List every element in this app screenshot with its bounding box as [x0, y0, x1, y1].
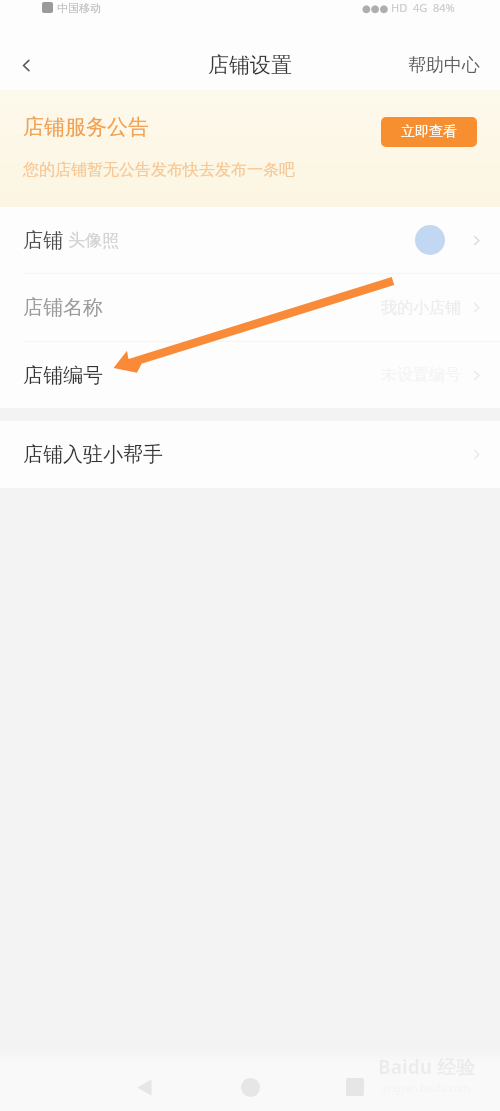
staticText: HD 4G 84% [391, 0, 455, 15]
button[interactable]: 店铺名称 [0, 274, 500, 341]
staticText: 店铺编号 [23, 363, 103, 388]
staticText: 店铺 [23, 228, 63, 253]
staticText: 中国移动 [57, 1, 101, 15]
button[interactable]: Back [8, 47, 44, 83]
staticText: 我的小店铺 [381, 298, 461, 318]
staticText: 未设置编号 [381, 365, 461, 385]
staticText: 店铺设置 [208, 52, 292, 78]
button[interactable]: 帮助中心 [394, 46, 500, 85]
button[interactable]: Back [120, 1063, 170, 1111]
button[interactable]: 店铺 [0, 207, 500, 273]
staticText: 帮助中心 [408, 54, 480, 77]
staticText: 头像照 [68, 230, 119, 251]
button[interactable]: 立即查看 [381, 117, 477, 147]
button[interactable]: Recents [330, 1063, 380, 1111]
button[interactable]: 店铺入驻小帮手 [0, 421, 500, 488]
button[interactable]: 店铺编号 [0, 342, 500, 408]
staticText: 店铺服务公告 [23, 114, 149, 140]
staticText: 您的店铺暂无公告发布快去发布一条吧 [23, 160, 295, 180]
staticText: ●●● [362, 1, 391, 15]
button[interactable]: Home [225, 1063, 275, 1111]
staticText: 店铺名称 [23, 295, 103, 320]
staticText: 店铺入驻小帮手 [23, 442, 163, 467]
staticText: Baidu 经验 [378, 1054, 475, 1080]
staticText: 立即查看 [401, 123, 457, 141]
